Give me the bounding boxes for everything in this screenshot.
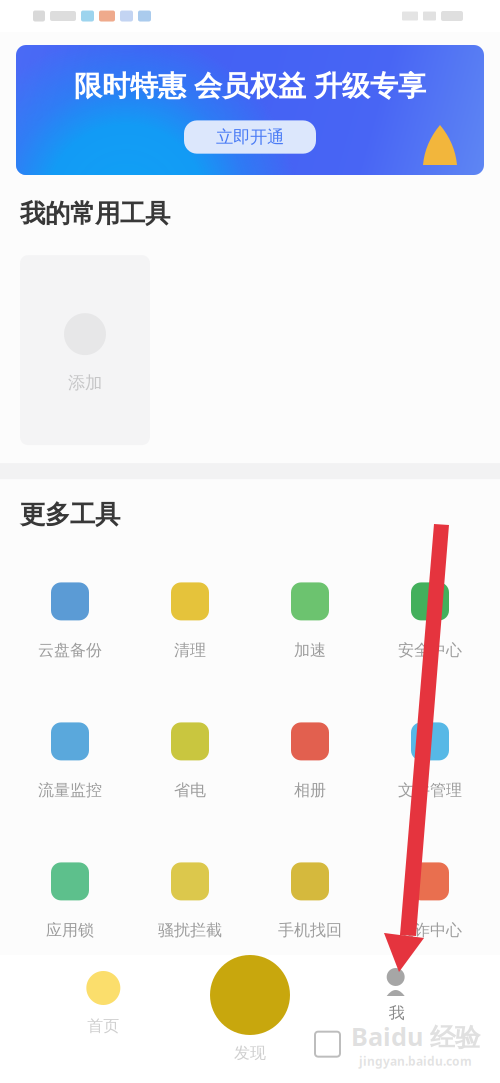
staticText: 更多工具 xyxy=(20,499,120,530)
button[interactable]: 骚扰拦截 xyxy=(130,852,250,950)
staticText: 文件管理 xyxy=(398,780,462,800)
button[interactable]: 我 xyxy=(323,955,470,1083)
staticText: 云盘备份 xyxy=(38,640,102,660)
button[interactable]: 首页 xyxy=(30,955,177,1083)
staticText: 加速 xyxy=(294,640,326,660)
button[interactable]: 相册 xyxy=(250,712,370,810)
staticText: Baidu 经验 xyxy=(351,1019,480,1053)
staticText: 限时特惠 会员权益 升级专享 xyxy=(74,69,426,103)
button[interactable]: 安全中心 xyxy=(370,572,490,670)
staticText: 骚扰拦截 xyxy=(158,920,222,940)
button[interactable]: 加速 xyxy=(250,572,370,670)
staticText: 我 xyxy=(389,1003,405,1023)
button[interactable]: 流量监控 xyxy=(10,712,130,810)
button[interactable]: 限时特惠 会员权益 升级专享 xyxy=(0,32,500,182)
staticText: 添加 xyxy=(68,372,102,393)
staticText: 应用锁 xyxy=(46,920,94,940)
button[interactable]: 扫一扫 xyxy=(177,955,323,1083)
button[interactable]: 云盘备份 xyxy=(10,572,130,670)
staticText: 相册 xyxy=(294,780,326,800)
button[interactable]: 添加 xyxy=(20,255,150,445)
staticText: 安全中心 xyxy=(398,640,462,660)
staticText: 首页 xyxy=(87,1016,119,1036)
staticText: jingyan.baidu.com xyxy=(359,1053,472,1069)
button[interactable]: 省电 xyxy=(130,712,250,810)
button[interactable]: 文件管理 xyxy=(370,712,490,810)
staticText: 省电 xyxy=(174,780,206,800)
button[interactable]: 应用锁 xyxy=(10,852,130,950)
staticText: 发现 xyxy=(234,1043,266,1063)
button[interactable]: 清理 xyxy=(130,572,250,670)
staticText: 清理 xyxy=(174,640,206,660)
staticText: 手机找回 xyxy=(278,920,342,940)
button[interactable]: 手机找回 xyxy=(250,852,370,950)
button[interactable]: 反诈中心 xyxy=(370,852,490,950)
staticText: 立即开通 xyxy=(216,126,284,148)
staticText: 反诈中心 xyxy=(398,920,462,940)
staticText: 流量监控 xyxy=(38,780,102,800)
staticText: 我的常用工具 xyxy=(20,198,170,229)
